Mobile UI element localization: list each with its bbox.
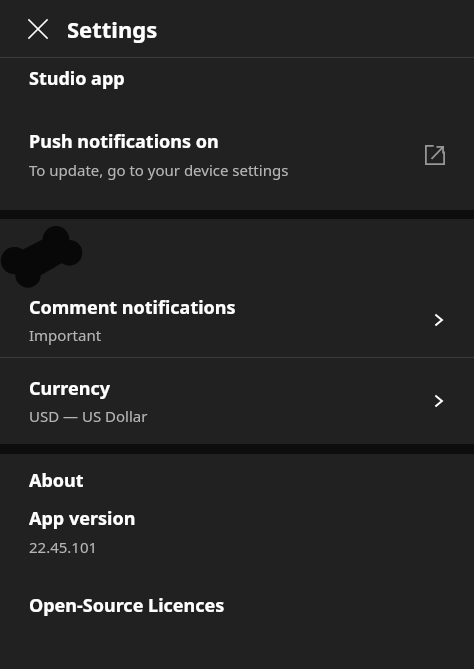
staticText: Push notifications on <box>29 129 219 154</box>
staticText: Open-Source Licences <box>29 593 225 618</box>
button[interactable]: Open-Source Licences <box>0 593 474 618</box>
other: Open device settings <box>418 138 452 172</box>
staticText: App version <box>29 506 136 531</box>
button[interactable]: Currency <box>0 358 474 444</box>
staticText: Settings <box>67 14 158 44</box>
staticText: 22.45.101 <box>29 537 98 557</box>
staticText: USD — US Dollar <box>29 406 148 426</box>
staticText: About <box>29 468 84 493</box>
staticText: Currency <box>29 376 110 401</box>
staticText: Comment notifications <box>29 295 236 320</box>
button[interactable]: App version <box>0 506 474 571</box>
button[interactable]: Comment notifications <box>0 283 474 357</box>
staticText: Important <box>29 325 102 345</box>
staticText: To update, go to your device settings <box>29 160 289 180</box>
button[interactable]: Push notifications on <box>0 99 474 210</box>
staticText: Studio app <box>29 66 125 91</box>
button[interactable]: Close <box>20 11 56 47</box>
